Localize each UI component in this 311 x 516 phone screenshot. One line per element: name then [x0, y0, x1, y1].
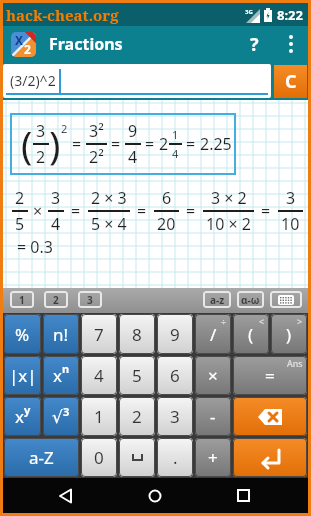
staticText: |x|	[9, 364, 37, 387]
staticText: 1	[172, 127, 179, 142]
staticText: α-ω	[241, 293, 260, 307]
button[interactable]: 6	[157, 356, 193, 395]
staticText: 10	[281, 213, 300, 235]
staticText: 5 × 4	[91, 213, 127, 235]
staticText: 4	[172, 146, 179, 161]
staticText: 3	[51, 187, 61, 209]
button[interactable]	[274, 26, 308, 62]
button[interactable]: ?	[234, 26, 274, 62]
staticText: 8	[132, 323, 142, 346]
button[interactable]: a-z	[203, 291, 231, 308]
staticText: a-z	[210, 293, 225, 307]
staticText: 2 × 3	[91, 187, 127, 209]
staticText: =	[186, 200, 196, 222]
staticText: 7	[94, 323, 104, 346]
staticText: 6	[170, 364, 180, 387]
staticText: 20	[157, 213, 176, 235]
staticText: 3²	[89, 120, 104, 142]
button[interactable]: 8	[119, 314, 155, 354]
staticText: 2²	[89, 146, 104, 168]
staticText: ÷	[221, 315, 227, 327]
staticText: 8:22	[277, 6, 303, 24]
staticText: =	[72, 133, 82, 155]
button[interactable]: 3	[157, 397, 193, 436]
button[interactable]	[270, 291, 302, 308]
button[interactable]: /	[195, 314, 231, 354]
staticText: C	[285, 69, 297, 94]
staticText: 4	[128, 146, 138, 168]
staticText: (	[248, 323, 254, 346]
staticText: Ans	[287, 357, 303, 369]
button[interactable]	[233, 397, 307, 436]
button[interactable]: +	[195, 438, 231, 477]
button[interactable]: 2	[44, 291, 68, 308]
button[interactable]: (	[233, 314, 269, 354]
staticText: =	[71, 200, 81, 222]
button[interactable]: .	[157, 438, 193, 477]
button[interactable]: 4	[81, 356, 117, 395]
staticText: (3/2)^2	[10, 71, 56, 90]
button[interactable]: ×	[195, 356, 231, 395]
button[interactable]: =	[233, 356, 307, 395]
staticText: x	[53, 364, 62, 387]
staticText: a-Z	[29, 446, 54, 469]
button[interactable]: |x|	[4, 356, 41, 395]
staticText: 2	[61, 121, 68, 136]
button[interactable]	[119, 438, 155, 477]
staticText: 3	[170, 405, 180, 428]
button[interactable]: x	[4, 397, 41, 436]
staticText: =	[145, 133, 155, 155]
staticText: 10 × 2	[206, 213, 251, 235]
staticText: )	[49, 118, 61, 170]
staticText: 3 × 2	[211, 187, 247, 209]
staticText: ×	[208, 364, 218, 387]
staticText: 1	[94, 405, 104, 428]
button[interactable]: 2	[119, 397, 155, 436]
staticText: %	[15, 323, 30, 346]
button[interactable]: 1	[10, 291, 34, 308]
staticText: >	[297, 315, 303, 327]
staticText: n!	[53, 323, 69, 346]
staticText: -	[210, 405, 216, 428]
button[interactable]: %	[4, 314, 41, 354]
staticText: =	[265, 364, 275, 387]
button[interactable]: 9	[157, 314, 193, 354]
staticText: 3	[286, 187, 296, 209]
staticText: 2.25	[200, 133, 232, 155]
staticText: 2	[24, 41, 31, 57]
staticText: =	[186, 133, 196, 155]
button[interactable]: -	[195, 397, 231, 436]
button[interactable]: C	[274, 65, 307, 98]
staticText: hack-cheat.org	[6, 5, 119, 25]
button[interactable]: a-Z	[4, 438, 79, 477]
staticText: +	[208, 446, 218, 469]
button[interactable]	[148, 489, 162, 503]
button[interactable]: √	[43, 397, 79, 436]
staticText: 2	[159, 133, 169, 155]
button[interactable]: 1	[81, 397, 117, 436]
staticText: /	[210, 323, 217, 346]
button[interactable]: )	[271, 314, 307, 354]
staticText: 9	[170, 323, 180, 346]
staticText: 6	[162, 187, 172, 209]
button[interactable]: n!	[43, 314, 79, 354]
staticText: <	[259, 315, 265, 327]
staticText: =	[111, 133, 121, 155]
staticText: 3	[36, 120, 46, 142]
button[interactable]	[59, 489, 73, 503]
staticText: 4	[94, 364, 104, 387]
button[interactable]: x	[43, 356, 79, 395]
button[interactable]: 3	[78, 291, 102, 308]
button[interactable]: 5	[119, 356, 155, 395]
staticText: y	[24, 402, 31, 417]
staticText: Fractions	[49, 33, 123, 55]
button[interactable]	[237, 489, 250, 502]
button[interactable]: 0	[81, 438, 117, 477]
staticText: 5	[15, 213, 25, 235]
staticText: x	[15, 405, 24, 428]
button[interactable]	[233, 438, 307, 477]
button[interactable]: α-ω	[237, 291, 264, 308]
staticText: X	[15, 32, 24, 48]
staticText: 2	[15, 187, 25, 209]
button[interactable]: 7	[81, 314, 117, 354]
